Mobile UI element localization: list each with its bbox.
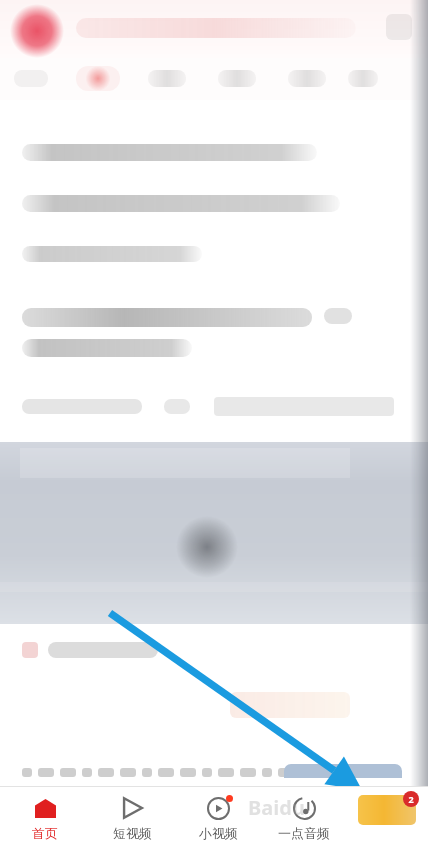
staticText: 一点音频 bbox=[278, 825, 330, 841]
staticText: 短视频 bbox=[113, 825, 152, 841]
staticText: 2 bbox=[408, 793, 414, 805]
button[interactable]: 首页 bbox=[2, 788, 88, 841]
button[interactable]: 一点音频 bbox=[261, 788, 347, 841]
staticText: Baidu bbox=[248, 794, 305, 821]
staticText: 小视频 bbox=[199, 825, 238, 841]
button[interactable]: 小视频 bbox=[175, 788, 261, 841]
button[interactable]: 短视频 bbox=[89, 788, 175, 841]
staticText: 首页 bbox=[32, 825, 58, 841]
button[interactable]: 我的 bbox=[348, 799, 426, 829]
